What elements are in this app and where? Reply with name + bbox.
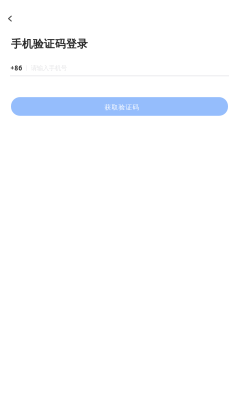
button[interactable]: 获取验证码 [11,97,228,116]
staticText: +86 [11,64,23,72]
staticText: 获取验证码 [104,103,139,111]
button[interactable]: Back [0,8,21,30]
staticText: 手机验证码登录 [11,37,88,51]
staticText: 请输入手机号 [31,64,67,72]
